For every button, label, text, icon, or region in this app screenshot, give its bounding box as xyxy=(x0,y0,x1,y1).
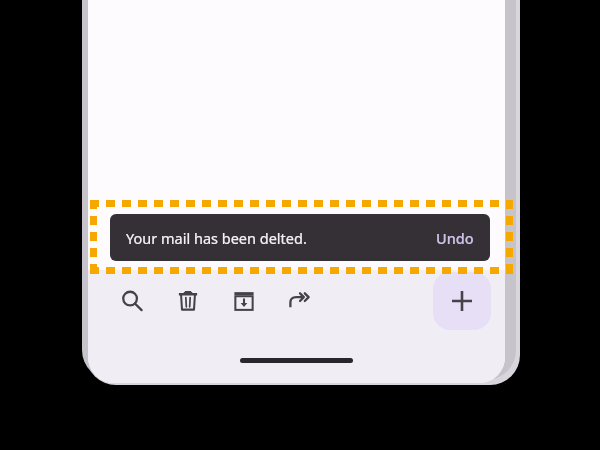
button[interactable]: Delete xyxy=(160,273,216,329)
staticText: Your mail has been delted. xyxy=(126,228,307,248)
button[interactable]: Forward xyxy=(272,273,328,329)
button[interactable]: Search xyxy=(104,273,160,329)
staticText: Undo xyxy=(436,228,474,248)
button[interactable]: Undo xyxy=(436,228,474,248)
button[interactable]: Your mail has been delted. xyxy=(110,214,490,261)
button[interactable]: Archive xyxy=(216,273,272,329)
button[interactable]: Compose xyxy=(433,272,491,330)
